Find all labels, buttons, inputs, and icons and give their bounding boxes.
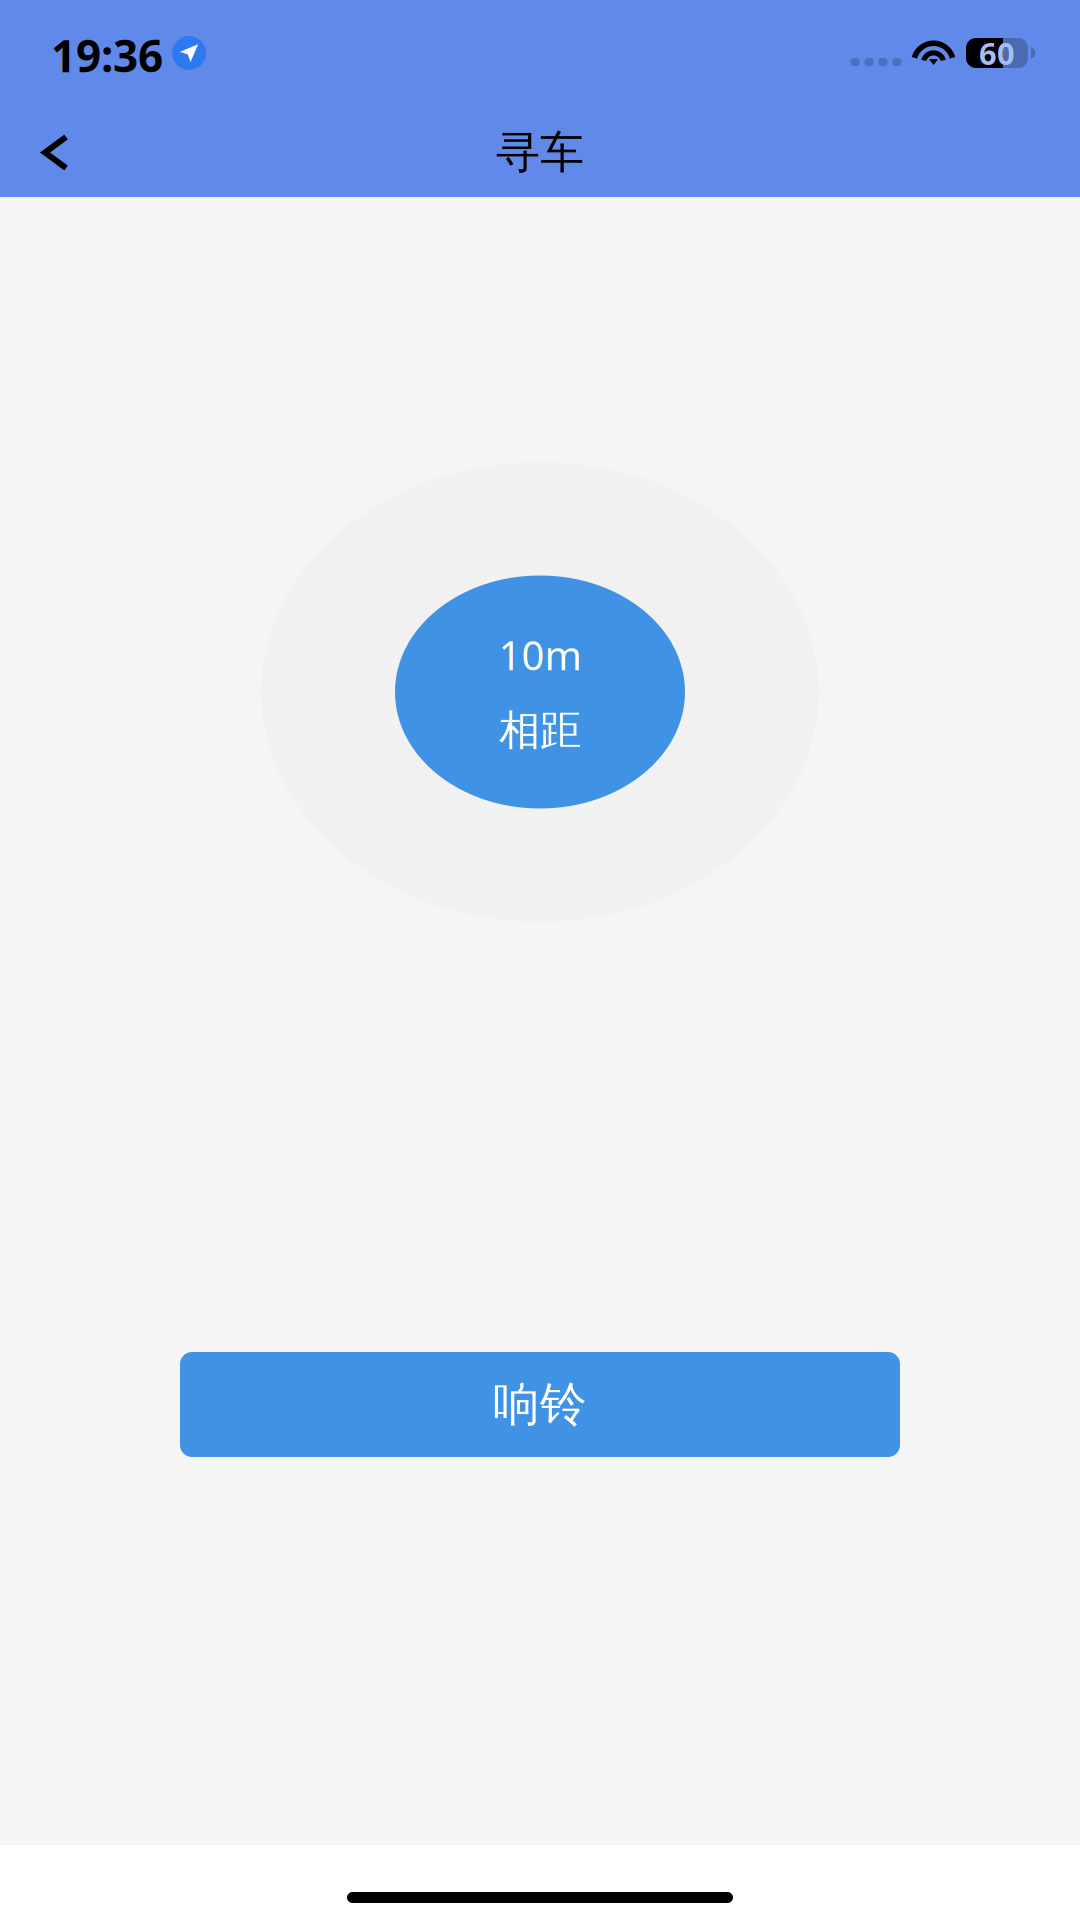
button[interactable]: Back xyxy=(0,110,110,195)
staticText: 寻车 xyxy=(496,125,584,179)
staticText: 19:36 xyxy=(51,26,163,84)
staticText: 10m xyxy=(498,628,581,681)
staticText: 相距 xyxy=(499,705,581,756)
staticText: 响铃 xyxy=(493,1376,587,1433)
staticText: 60 xyxy=(979,33,1015,73)
button[interactable]: 响铃 xyxy=(180,1352,900,1457)
